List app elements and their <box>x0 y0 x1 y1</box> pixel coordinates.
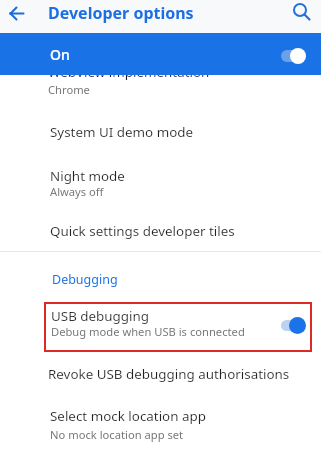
staticText: WebView implementation <box>48 63 210 81</box>
staticText: Night mode <box>50 167 125 185</box>
button[interactable] <box>0 160 321 208</box>
button[interactable] <box>289 317 306 334</box>
staticText: Debug mode when USB is connected <box>51 324 245 339</box>
staticText: USB debugging <box>51 307 150 325</box>
staticText: Select mock location app <box>50 407 206 425</box>
button[interactable] <box>0 400 321 450</box>
button[interactable] <box>0 212 321 254</box>
staticText: System UI demo mode <box>50 123 194 141</box>
button[interactable] <box>44 302 312 352</box>
staticText: On <box>50 45 70 64</box>
button[interactable] <box>292 2 312 22</box>
staticText: Developer options <box>48 2 194 24</box>
button[interactable]: On <box>0 33 321 75</box>
button[interactable] <box>0 356 321 398</box>
staticText: Quick settings developer tiles <box>50 222 235 240</box>
staticText: No mock location app set <box>50 427 184 442</box>
staticText: Always off <box>50 184 104 199</box>
button[interactable] <box>0 110 321 158</box>
staticText: Chrome <box>48 82 90 97</box>
staticText: Revoke USB debugging authorisations <box>48 365 290 383</box>
button[interactable] <box>9 6 25 22</box>
staticText: Debugging <box>52 271 118 288</box>
